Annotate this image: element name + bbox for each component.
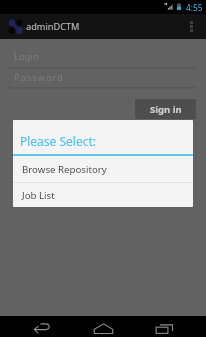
button[interactable]: Browse Repository <box>13 156 193 182</box>
button[interactable]: Sign in <box>135 99 196 119</box>
button[interactable]: Job List <box>13 183 193 207</box>
button[interactable]: More options <box>179 14 204 39</box>
staticText: Browse Repository <box>22 163 107 176</box>
staticText: Please Select: <box>20 133 97 149</box>
button[interactable]: Home <box>86 316 121 337</box>
button[interactable]: Recent apps <box>147 316 181 337</box>
button[interactable]: Back <box>26 316 60 337</box>
staticText: Password <box>14 71 64 84</box>
staticText: Job List <box>22 189 55 202</box>
staticText: 4:55 <box>186 2 203 13</box>
staticText: Login <box>14 50 39 63</box>
staticText: Sign in <box>150 103 182 116</box>
staticText: adminDCTM <box>26 20 80 33</box>
